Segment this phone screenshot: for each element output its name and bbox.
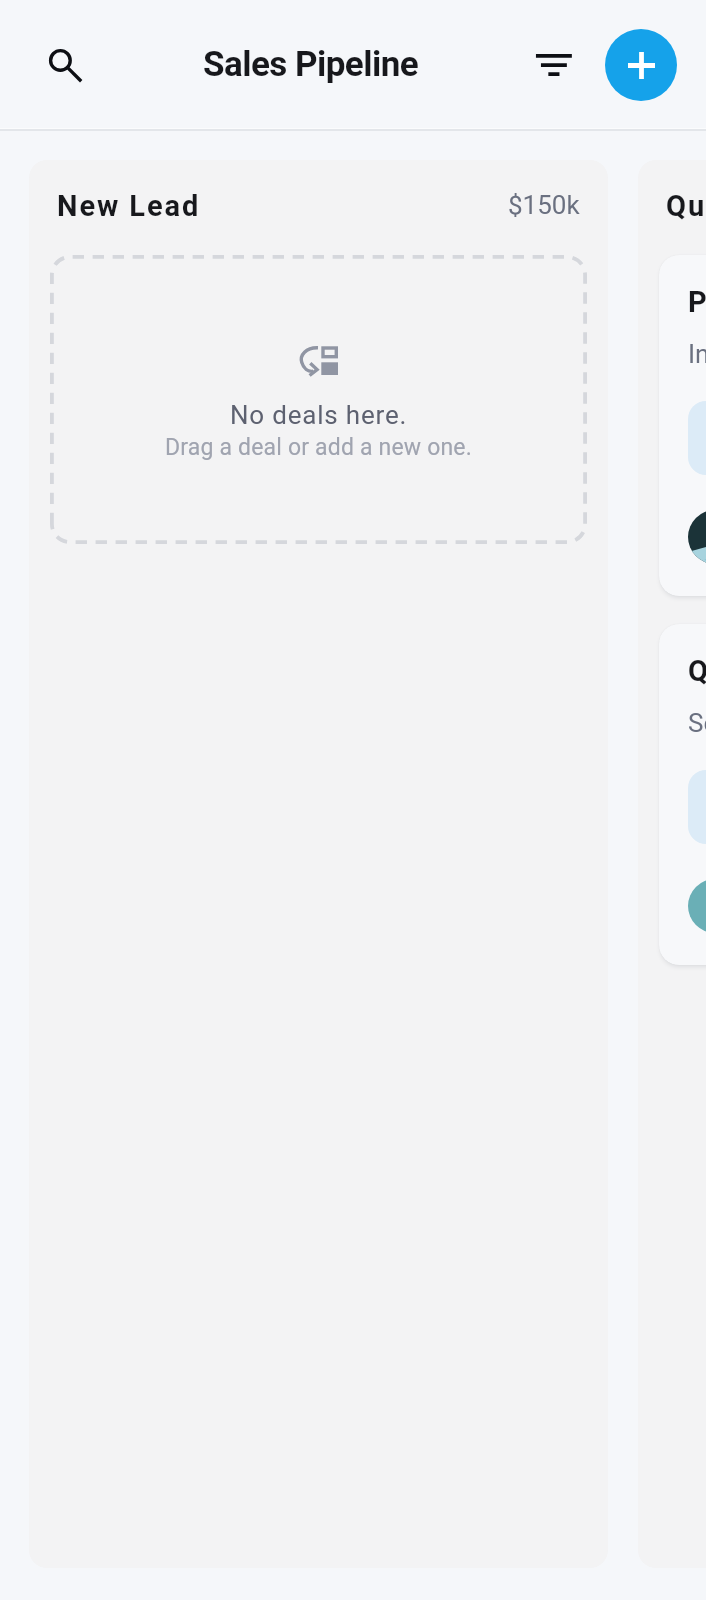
button[interactable]: Filter [520,26,588,94]
staticText: Quant LLC [688,654,706,688]
staticText: Initial outreach [688,339,706,369]
staticText: Drag a deal or add a new one. [165,434,472,461]
staticText: Qualified [666,189,706,223]
staticText: New Lead [57,189,201,223]
button[interactable]: Prime Corp [688,285,706,564]
staticText: No deals here. [230,400,408,430]
staticText: Sales Pipeline [203,44,419,85]
staticText: Prime Corp [688,285,706,319]
staticText: Sent proposal [688,708,706,738]
button[interactable]: Search [26,26,94,94]
staticText: $150k [508,190,580,220]
button[interactable]: Add deal [605,29,677,101]
button[interactable]: Quant LLC [688,654,706,933]
